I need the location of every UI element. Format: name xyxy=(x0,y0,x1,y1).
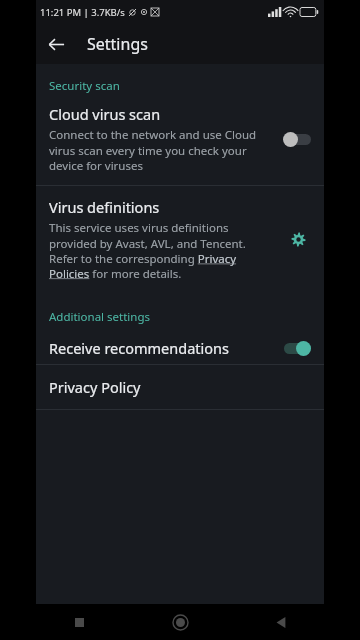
button[interactable]: Virus definitions xyxy=(36,186,324,293)
button[interactable]: Toggle on xyxy=(279,336,315,360)
staticText: Connect to the network and use Cloud vir… xyxy=(49,127,273,173)
button[interactable]: Privacy Policy xyxy=(36,365,324,409)
staticText: Settings xyxy=(87,33,148,55)
button[interactable]: Toggle off xyxy=(279,127,315,151)
button[interactable]: Home xyxy=(158,604,202,640)
staticText: This service uses virus definitions prov… xyxy=(49,220,275,281)
button[interactable]: Back xyxy=(36,24,76,64)
staticText: Virus definitions xyxy=(49,197,160,217)
button[interactable]: Cloud virus scan xyxy=(36,100,324,185)
staticText: Cloud virus scan xyxy=(49,104,161,124)
button[interactable]: Back xyxy=(259,604,303,640)
staticText: Privacy Policy xyxy=(49,377,141,397)
staticText: Security scan xyxy=(49,78,120,94)
button[interactable]: Recents xyxy=(57,604,101,640)
staticText: Receive recommendations xyxy=(49,338,279,358)
button[interactable]: Virus definition settings xyxy=(281,222,315,256)
staticText: Additional settings xyxy=(49,309,151,325)
button[interactable]: Receive recommendations xyxy=(36,331,324,364)
staticText: 11:21 PM | 3.7KB/s xyxy=(40,6,125,19)
